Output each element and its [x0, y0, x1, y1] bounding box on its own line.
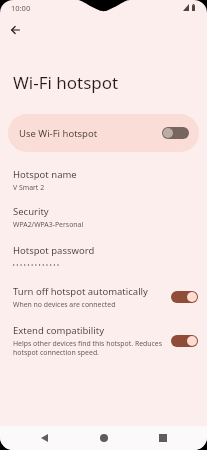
button[interactable]: Use Wi-Fi hotspot: [8, 114, 199, 152]
button[interactable]: Turn off hotspot automatically: [0, 285, 207, 309]
staticText: Hotspot password: [13, 244, 95, 257]
staticText: Wi-Fi hotspot: [13, 71, 119, 94]
button[interactable]: Recent apps: [153, 428, 173, 448]
button[interactable]: Off: [162, 127, 189, 139]
staticText: Hotspot name: [13, 168, 77, 181]
staticText: Security: [13, 205, 49, 218]
staticText: V Smart 2: [13, 183, 45, 192]
button[interactable]: Home: [94, 428, 114, 448]
staticText: Turn off hotspot automatically: [13, 285, 148, 298]
button[interactable]: Back: [34, 428, 54, 448]
staticText: 10:00: [11, 3, 31, 13]
button[interactable]: On: [171, 335, 198, 347]
button[interactable]: Hotspot name: [0, 168, 207, 192]
button[interactable]: Extend compatibility: [0, 324, 207, 357]
button[interactable]: Security: [0, 205, 207, 229]
staticText: WPA2/WPA3-Personal: [13, 220, 84, 229]
staticText: When no devices are connected: [13, 300, 116, 309]
button[interactable]: Back: [2, 17, 28, 43]
button[interactable]: On: [171, 291, 198, 303]
staticText: Extend compatibility: [13, 324, 104, 337]
staticText: Use Wi-Fi hotspot: [19, 127, 98, 140]
staticText: Helps other devices find this hotspot. R…: [13, 339, 165, 357]
button[interactable]: Hotspot password: [0, 244, 207, 268]
